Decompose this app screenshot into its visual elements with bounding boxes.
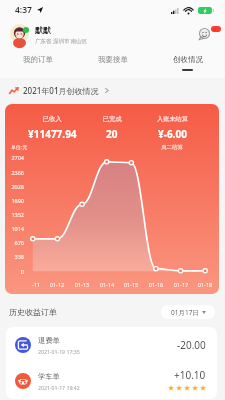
staticText: 历史收益订单 [9,307,57,317]
staticText: 退费单 [38,336,60,345]
staticText: ¥11477.94 [28,127,77,141]
staticText: 01-12 [46,281,68,288]
button[interactable]: 退费单 [6,327,217,363]
staticText: 01-16 [145,281,167,288]
staticText: 01-17 [170,281,192,288]
staticText: 默默 [35,25,51,35]
staticText: 4:37 [15,4,32,16]
staticText: 已收入 [43,115,62,123]
staticText: +10.10 [174,368,206,382]
button[interactable]: 01月17日 [161,305,215,319]
staticText: 1690 [5,197,24,204]
staticText: 2704 [5,154,24,161]
staticText: ¥-6.00 [158,127,187,141]
staticText: 338 [5,253,24,260]
button[interactable]: 2021年01月创收情况 [9,83,225,98]
staticText: 676 [5,239,24,246]
staticText: 01-13 [71,281,93,288]
staticText: 1352 [5,211,24,218]
staticText: 01-14 [96,281,118,288]
staticText: -20.00 [177,338,206,352]
staticText: 学车单 [38,372,60,381]
staticText: 01-11 [31,281,44,288]
staticText: 创收情况 [173,55,203,64]
staticText: 我要接单 [98,55,128,64]
button[interactable]: 我的订单 [0,50,75,78]
button[interactable]: 我要接单 [75,50,150,78]
staticText: 01-18 [194,281,216,288]
staticText: 周二结算 [161,144,183,151]
staticText: 我的订单 [23,55,53,64]
staticText: 2021年01月创收情况 [23,85,99,96]
button[interactable]: Messages [199,23,221,41]
staticText: 2021-01-19 17:35 [38,348,80,355]
staticText: 广东省 深圳市 南山区 [35,37,88,45]
staticText: 2021-01-17 19:42 [38,384,80,391]
staticText: 1014 [5,225,24,232]
staticText: 2366 [5,169,24,176]
staticText: 0 [5,268,24,275]
button[interactable]: 学车单 [6,363,217,399]
button[interactable]: 创收情况 [150,50,225,78]
staticText: 01月17日 [171,308,199,317]
staticText: 入账未结算 [157,115,188,123]
staticText: 2028 [5,183,24,190]
staticText: 已完成 [103,115,122,123]
staticText: 01-15 [120,281,142,288]
staticText: 20 [106,127,118,141]
staticText: 单位:元 [11,144,28,151]
